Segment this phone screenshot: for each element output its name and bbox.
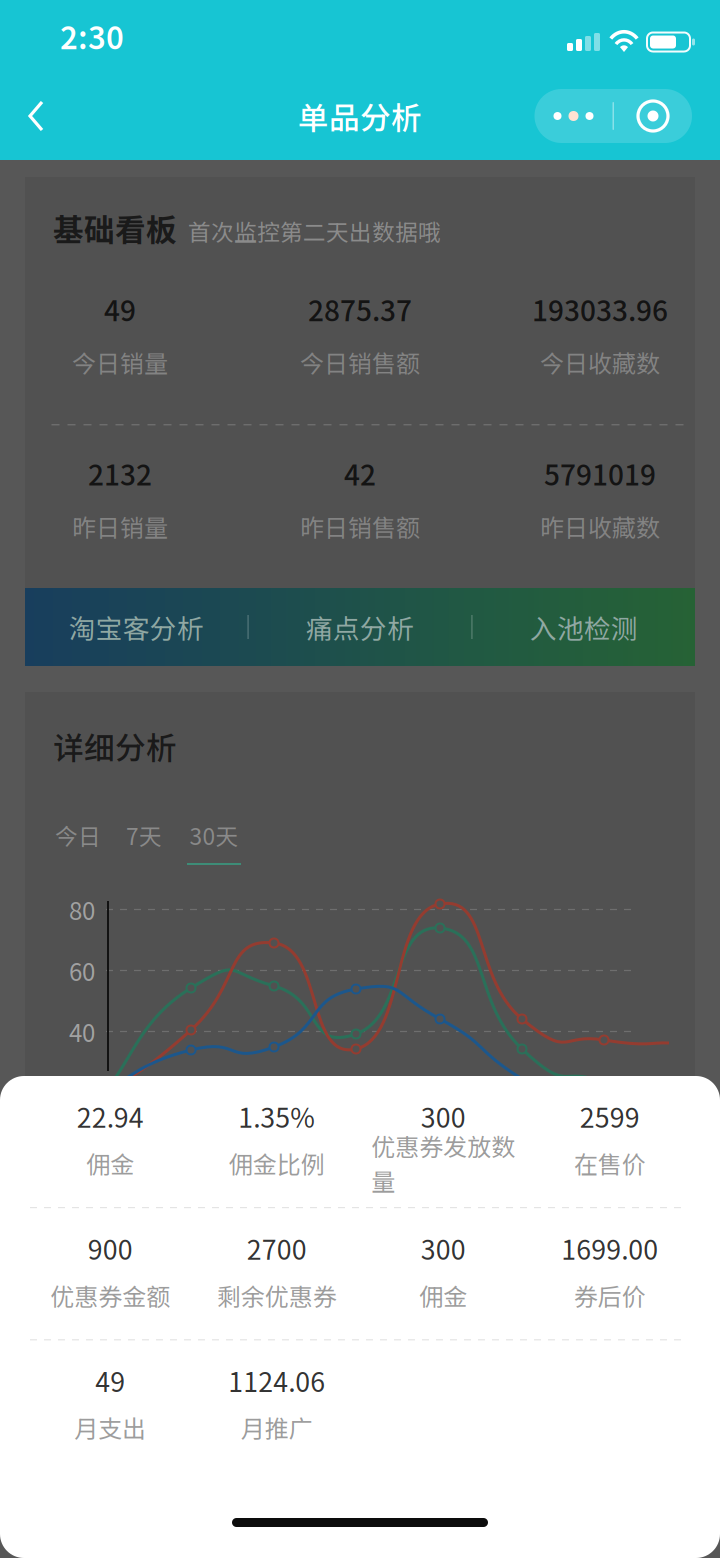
staticText: 昨日销售额 xyxy=(300,509,420,544)
staticText: 基础看板 xyxy=(53,206,177,250)
staticText: 2700 xyxy=(247,1229,307,1267)
staticText: 月支出 xyxy=(74,1410,146,1445)
staticText: 1699.00 xyxy=(561,1229,658,1267)
staticText: 300 xyxy=(421,1229,466,1267)
staticText: 300 xyxy=(421,1097,466,1135)
staticText: 月推广 xyxy=(241,1410,313,1445)
staticText: 今日销售额 xyxy=(300,345,420,379)
staticText: 2132 xyxy=(88,453,152,494)
staticText: 券后价 xyxy=(574,1278,646,1313)
button[interactable]: 今日 xyxy=(51,823,105,865)
staticText: 佣金 xyxy=(86,1146,134,1180)
staticText: 淘宝客分析 xyxy=(69,608,204,646)
staticText: 首次监控第二天出数据哦 xyxy=(188,214,441,247)
button[interactable]: 淘宝客分析 xyxy=(25,588,247,666)
staticText: 1.35% xyxy=(238,1097,315,1135)
staticText: 30天 xyxy=(189,819,238,851)
staticText: 佣金比例 xyxy=(229,1146,325,1180)
staticText: 40 xyxy=(69,1014,95,1049)
staticText: 7天 xyxy=(126,819,162,851)
staticText: 昨日销量 xyxy=(72,509,168,544)
staticText: 在售价 xyxy=(574,1146,646,1180)
staticText: 今日 xyxy=(55,819,101,851)
button[interactable]: More xyxy=(534,89,612,143)
staticText: 5791019 xyxy=(544,453,656,494)
button[interactable]: 7天 xyxy=(105,823,183,865)
button[interactable]: Close xyxy=(614,89,692,143)
staticText: 900 xyxy=(88,1229,133,1267)
staticText: 49 xyxy=(95,1361,125,1400)
staticText: 80 xyxy=(69,892,95,927)
staticText: 2:30 xyxy=(60,14,124,58)
staticText: 优惠券金额 xyxy=(50,1278,170,1313)
button[interactable]: Back xyxy=(0,81,75,151)
staticText: 22.94 xyxy=(77,1097,144,1135)
staticText: 今日销量 xyxy=(72,345,168,379)
staticText: 49 xyxy=(104,289,136,329)
staticText: 痛点分析 xyxy=(306,608,414,646)
staticText: 今日收藏数 xyxy=(540,345,660,379)
staticText: 2875.37 xyxy=(308,289,412,329)
staticText: 193033.96 xyxy=(532,289,668,329)
button[interactable]: 入池检测 xyxy=(473,588,695,666)
staticText: 60 xyxy=(69,953,95,988)
staticText: 详细分析 xyxy=(53,724,177,768)
staticText: 入池检测 xyxy=(530,608,638,646)
button[interactable]: 30天 xyxy=(183,823,245,865)
staticText: 1124.06 xyxy=(228,1361,325,1400)
staticText: 佣金 xyxy=(419,1278,467,1313)
staticText: 剩余优惠券 xyxy=(217,1278,337,1313)
staticText: 42 xyxy=(344,453,376,494)
staticText: 昨日收藏数 xyxy=(540,509,660,544)
staticText: 优惠券发放数量 xyxy=(371,1128,515,1198)
staticText: 2599 xyxy=(580,1097,640,1135)
staticText: 单品分析 xyxy=(298,94,422,138)
button[interactable]: 痛点分析 xyxy=(249,588,471,666)
